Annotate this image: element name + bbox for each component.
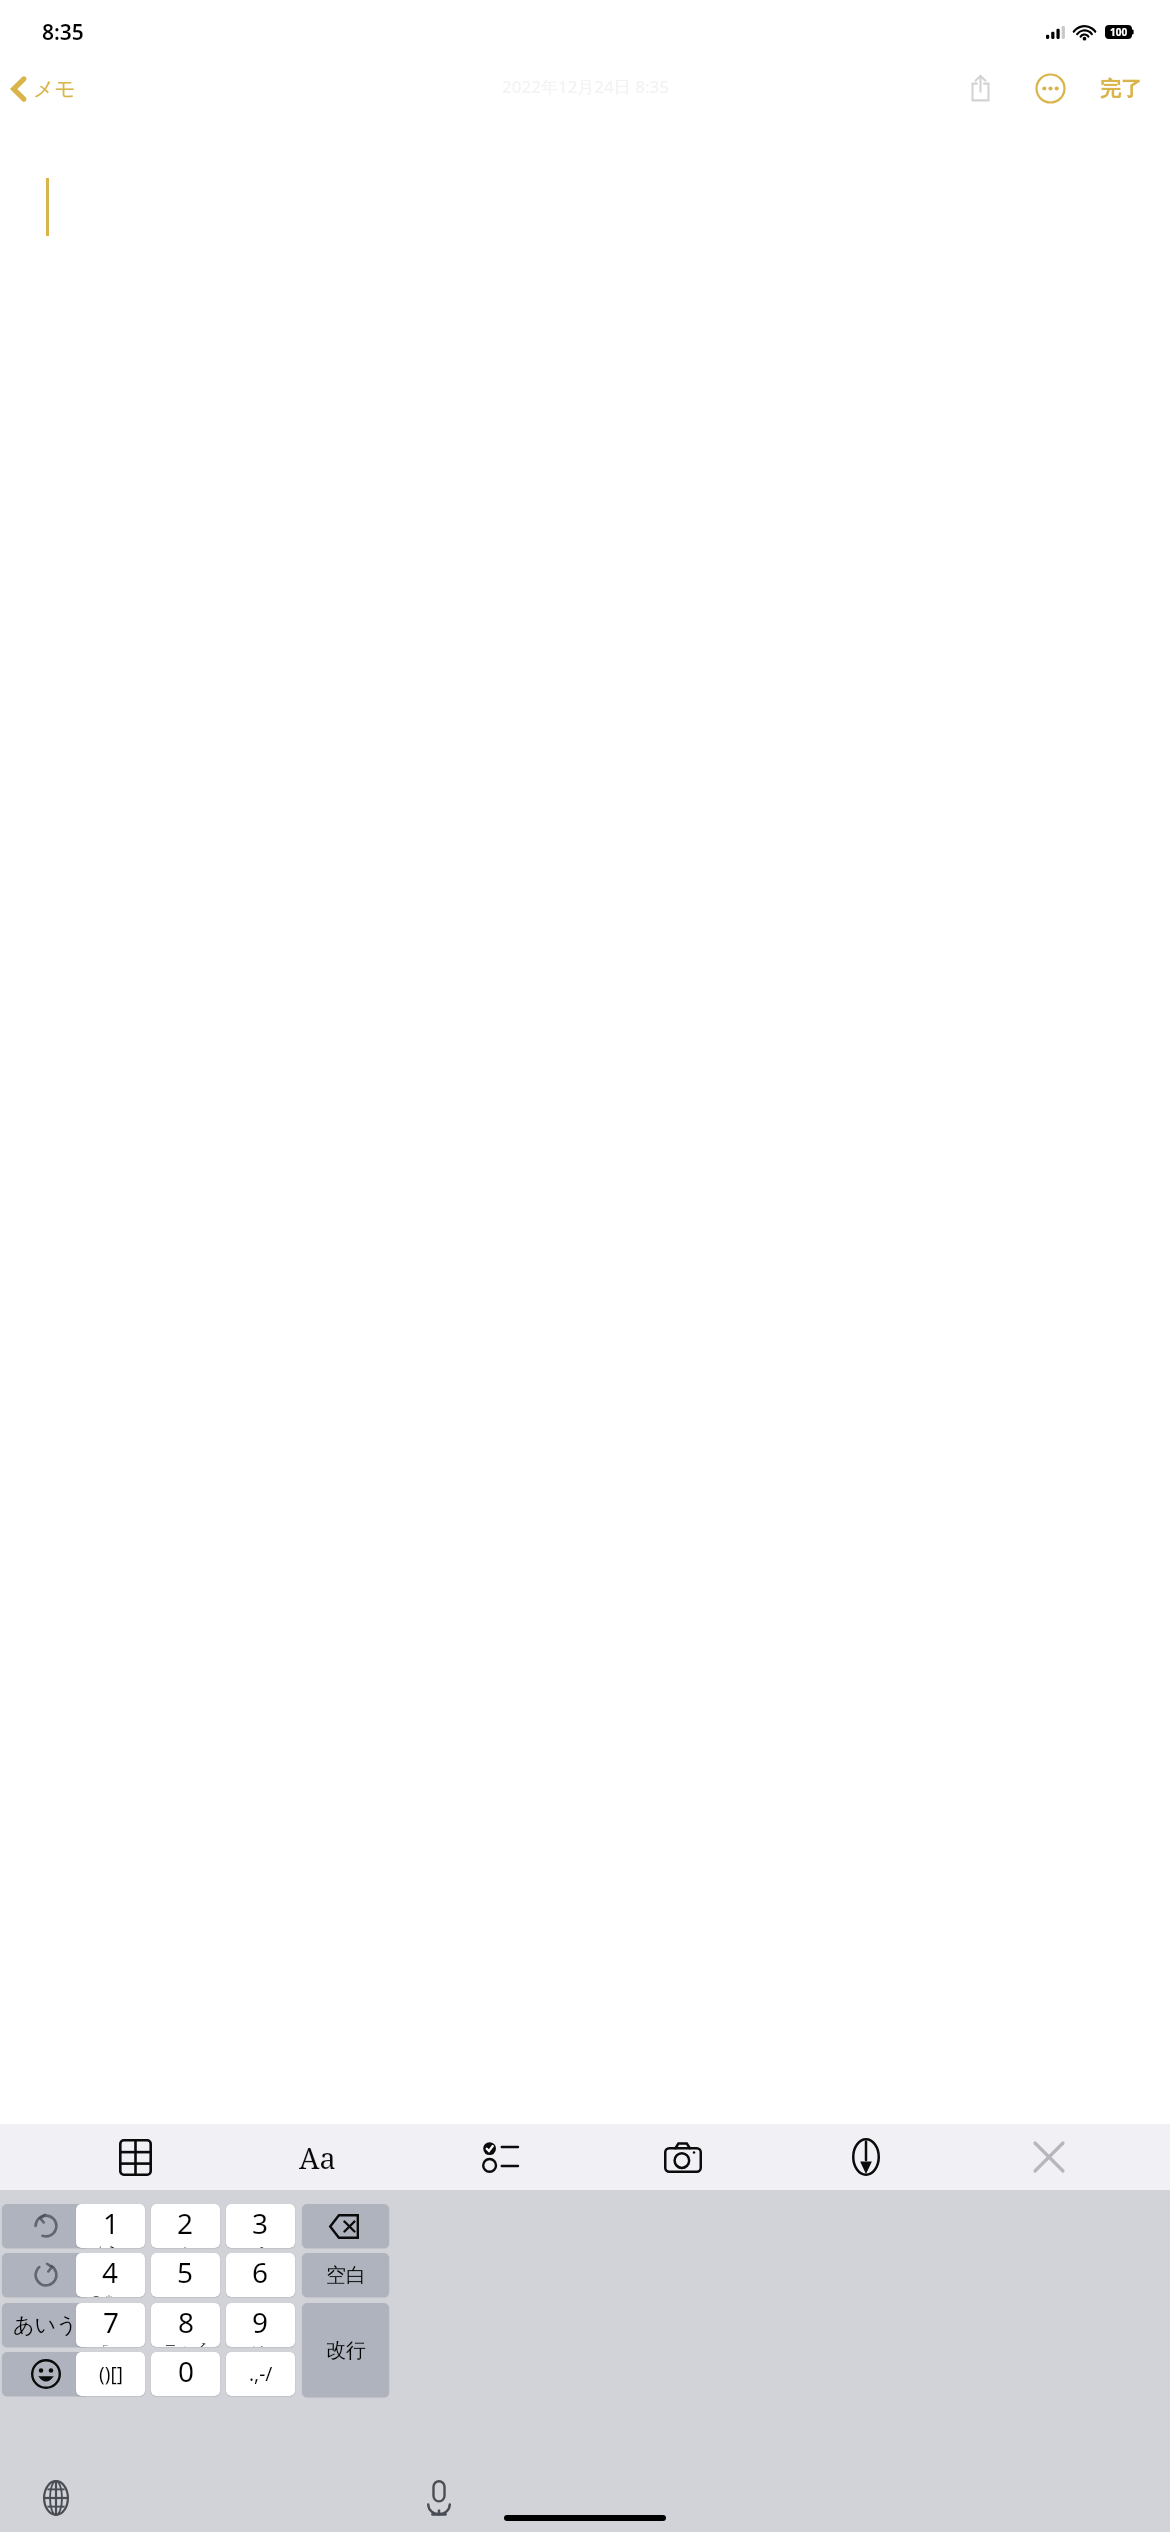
staticText: 8 — [178, 2303, 195, 2341]
button[interactable]: Close keyboard — [957, 2124, 1140, 2190]
button[interactable]: Redo — [2, 2204, 89, 2248]
staticText: ○＊・ — [90, 2292, 131, 2297]
staticText: 完了 — [1100, 76, 1142, 102]
button[interactable]: 8 — [151, 2303, 220, 2347]
button[interactable]: 0 — [151, 2352, 220, 2396]
button[interactable]: Checklist — [408, 2124, 591, 2190]
button[interactable]: Share — [960, 65, 1001, 112]
button[interactable]: 4 — [76, 2253, 145, 2297]
button[interactable]: ()[] — [76, 2352, 145, 2396]
button[interactable]: 完了 — [1094, 70, 1148, 108]
button[interactable]: 空白 — [302, 2253, 389, 2297]
button[interactable]: 7 — [76, 2303, 145, 2347]
button[interactable]: Camera — [591, 2124, 774, 2190]
button[interactable]: Next keyboard — [30, 2472, 82, 2524]
button[interactable]: Delete — [302, 2204, 389, 2248]
button[interactable]: Text format — [226, 2124, 408, 2190]
staticText: 0 — [178, 2352, 195, 2390]
button[interactable]: 3 — [226, 2204, 295, 2248]
button[interactable]: 改行 — [302, 2303, 389, 2397]
button[interactable]: 2 — [151, 2204, 220, 2248]
button[interactable]: Undo — [2, 2253, 89, 2297]
button[interactable]: Dictation — [413, 2472, 465, 2524]
button[interactable]: 9 — [226, 2303, 295, 2347]
staticText: 〒々〆 — [165, 2342, 207, 2347]
staticText: 2 — [177, 2204, 194, 2242]
staticText: ¥$€ — [173, 2243, 198, 2248]
button[interactable]: メモ — [0, 70, 88, 108]
staticText: Aa — [299, 2138, 336, 2177]
button[interactable]: More options — [1029, 67, 1072, 110]
button[interactable]: .,-/ — [226, 2352, 295, 2396]
button[interactable]: 6 — [226, 2253, 295, 2297]
button[interactable]: 5 — [151, 2253, 220, 2297]
staticText: .,-/ — [249, 2361, 273, 2387]
button[interactable]: あいう — [2, 2303, 89, 2347]
button[interactable]: Markup — [774, 2124, 957, 2190]
staticText: 「」: — [95, 2342, 127, 2347]
staticText: ()[] — [99, 2361, 123, 2387]
button[interactable]: 1 — [76, 2204, 145, 2248]
staticText: ☆♪→ — [94, 2243, 128, 2248]
staticText: あいう — [13, 2312, 78, 2338]
staticText: 2022年12月24日 8:35 — [502, 75, 669, 98]
button[interactable]: Emoji — [2, 2352, 89, 2396]
staticText: 7 — [103, 2303, 120, 2341]
staticText: %°# — [247, 2243, 274, 2248]
staticText: 改行 — [326, 2338, 366, 2363]
staticText: ^|\ — [250, 2342, 271, 2347]
staticText: 1 — [103, 2204, 120, 2242]
staticText: 4 — [102, 2253, 119, 2291]
staticText: 空白 — [326, 2263, 366, 2288]
staticText: 9 — [252, 2303, 269, 2341]
staticText: メモ — [33, 76, 76, 102]
staticText: 5 — [177, 2253, 194, 2291]
staticText: 8:35 — [42, 18, 84, 47]
staticText: 100 — [1110, 25, 1128, 39]
button[interactable]: Insert table — [44, 2124, 226, 2190]
staticText: 6 — [252, 2253, 269, 2291]
staticText: 3 — [252, 2204, 269, 2242]
